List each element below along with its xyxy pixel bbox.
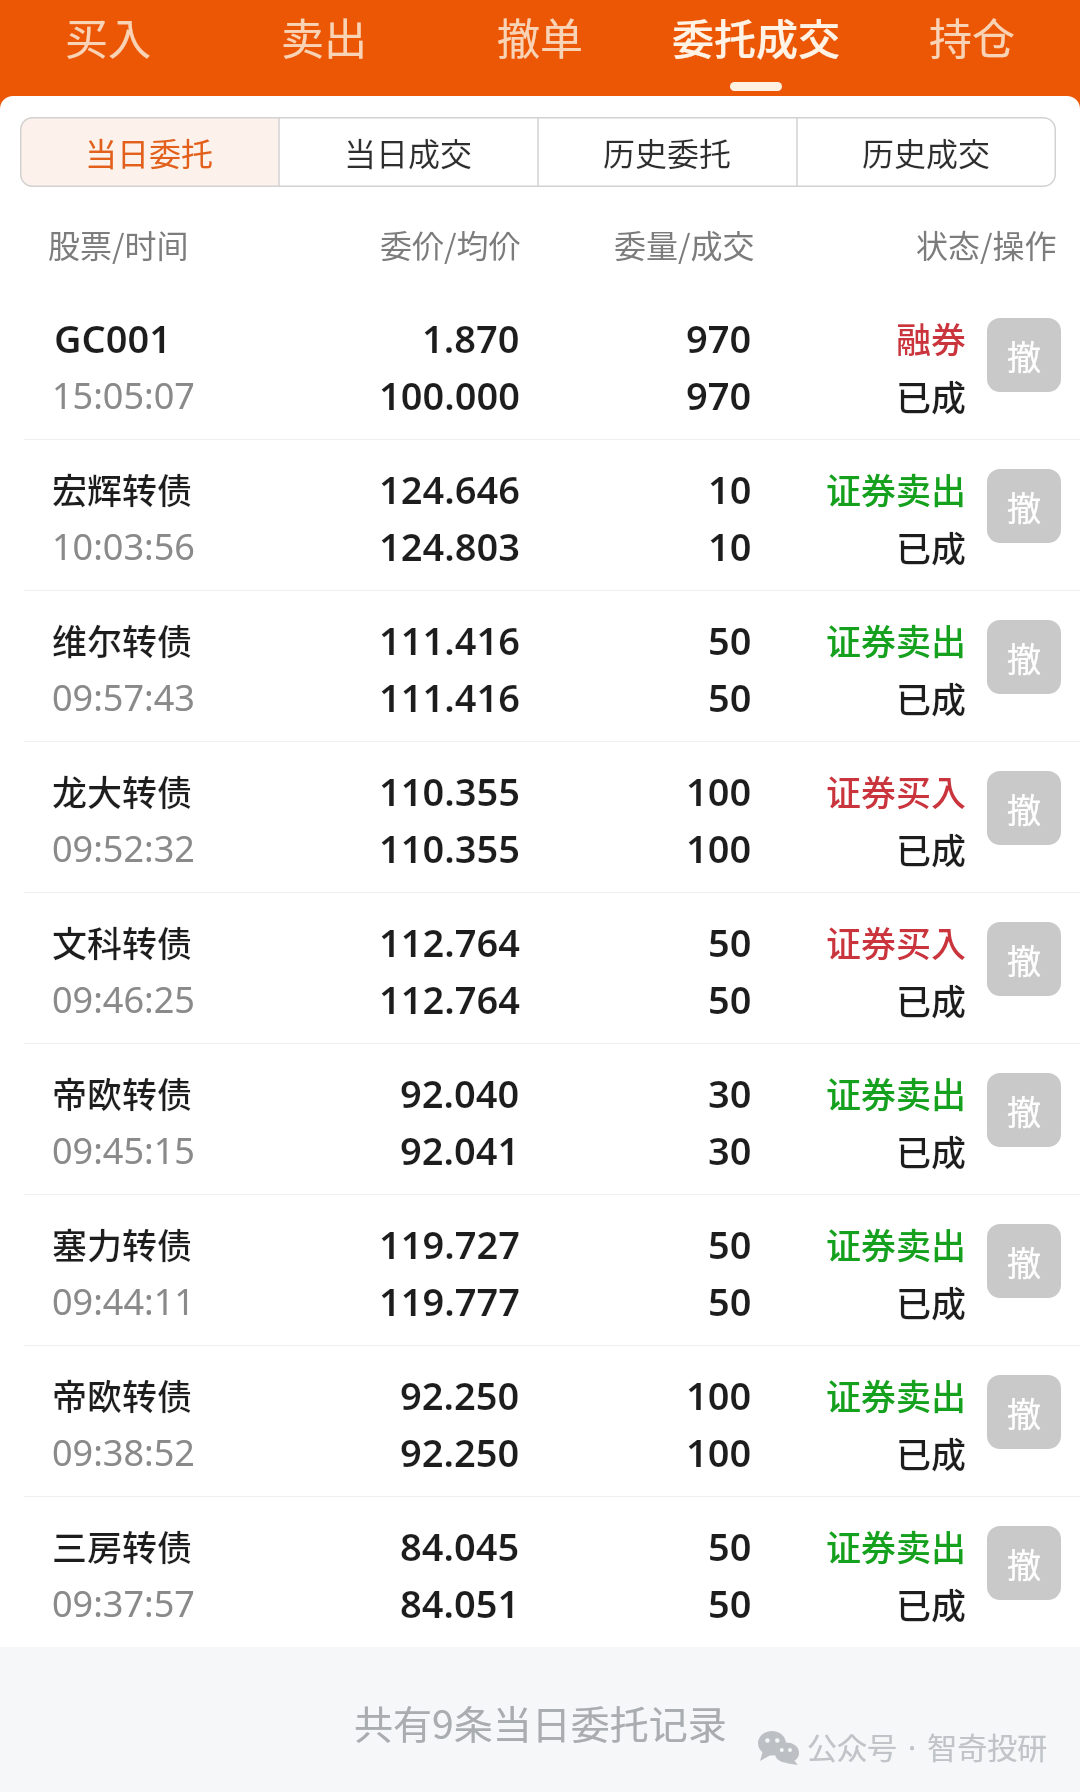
button[interactable]: 当日委托	[20, 117, 279, 187]
button[interactable]: 维尔转债	[0, 590, 1080, 741]
staticText: 撤	[1007, 784, 1041, 833]
staticText: 证券卖出	[826, 1218, 967, 1269]
staticText: 30	[708, 1124, 752, 1176]
staticText: 100.000	[379, 369, 520, 421]
button[interactable]: 卖出	[216, 0, 432, 100]
staticText: 124.646	[379, 463, 520, 515]
button[interactable]: 撤单	[987, 771, 1061, 845]
button[interactable]: 撤单	[987, 318, 1061, 392]
staticText: 证券卖出	[826, 1520, 967, 1571]
button[interactable]: GC001	[0, 288, 1080, 439]
staticText: 撤	[1007, 482, 1041, 531]
button[interactable]: 宏辉转债	[0, 439, 1080, 590]
staticText: 50	[708, 614, 752, 666]
button[interactable]: 文科转债	[0, 892, 1080, 1043]
staticText: 92.250	[400, 1426, 520, 1478]
staticText: 已成	[896, 672, 967, 723]
staticText: 92.040	[400, 1067, 520, 1119]
staticText: 撤	[1007, 1539, 1041, 1588]
staticText: 维尔转债	[52, 614, 193, 665]
staticText: 100	[686, 765, 752, 817]
button[interactable]: 塞力转债	[0, 1194, 1080, 1345]
staticText: 已成	[896, 521, 967, 572]
staticText: 状态/操作	[916, 221, 1057, 267]
staticText: 92.041	[400, 1124, 520, 1176]
staticText: 10:03:56	[52, 522, 195, 571]
staticText: 委价/均价	[380, 221, 521, 267]
staticText: 证券卖出	[826, 614, 967, 665]
staticText: 50	[708, 1577, 752, 1629]
staticText: 已成	[896, 1427, 967, 1478]
staticText: 09:45:15	[52, 1126, 195, 1175]
staticText: 50	[708, 671, 752, 723]
button[interactable]: 撤单	[987, 1224, 1061, 1298]
staticText: 112.764	[379, 973, 520, 1025]
staticText: 股票/时间	[48, 221, 189, 267]
staticText: 委托成交	[672, 6, 841, 67]
staticText: 92.250	[400, 1369, 520, 1421]
staticText: 持仓	[929, 5, 1015, 67]
staticText: 已成	[896, 1276, 967, 1327]
staticText: 证券卖出	[826, 1369, 967, 1420]
staticText: 10	[708, 463, 752, 515]
staticText: 09:52:32	[52, 824, 195, 873]
button[interactable]: 帝欧转债	[0, 1345, 1080, 1496]
staticText: 970	[686, 312, 752, 364]
button[interactable]: 撤单	[432, 0, 648, 100]
staticText: 证券卖出	[826, 1067, 967, 1118]
staticText: 龙大转债	[52, 765, 193, 816]
button[interactable]: 撤单	[987, 922, 1061, 996]
staticText: 111.416	[379, 614, 520, 666]
staticText: 撤	[1007, 633, 1041, 682]
staticText: 证券买入	[826, 916, 967, 967]
staticText: 委量/成交	[614, 221, 755, 267]
button[interactable]: 龙大转债	[0, 741, 1080, 892]
button[interactable]: 撤单	[987, 1526, 1061, 1600]
staticText: 帝欧转债	[52, 1067, 193, 1118]
staticText: 已成	[896, 1125, 967, 1176]
button[interactable]: 历史委托	[538, 117, 797, 187]
staticText: 已成	[896, 974, 967, 1025]
staticText: 09:57:43	[52, 673, 195, 722]
staticText: GC001	[54, 312, 172, 364]
staticText: 119.727	[379, 1218, 520, 1270]
staticText: 970	[686, 369, 752, 421]
staticText: 100	[686, 1426, 752, 1478]
staticText: 撤	[1007, 331, 1041, 380]
staticText: 110.355	[379, 765, 520, 817]
staticText: 50	[708, 1275, 752, 1327]
staticText: 50	[708, 973, 752, 1025]
staticText: 112.764	[379, 916, 520, 968]
staticText: 119.777	[379, 1275, 520, 1327]
staticText: 111.416	[379, 671, 520, 723]
staticText: 50	[708, 916, 752, 968]
staticText: 15:05:07	[52, 371, 195, 420]
staticText: 文科转债	[52, 916, 193, 967]
staticText: 历史委托	[603, 129, 732, 175]
staticText: 三房转债	[52, 1520, 193, 1571]
button[interactable]: 撤单	[987, 469, 1061, 543]
staticText: 历史成交	[862, 129, 991, 175]
button[interactable]: 委托成交	[648, 0, 864, 100]
staticText: 100	[686, 1369, 752, 1421]
staticText: 09:46:25	[52, 975, 195, 1024]
staticText: 30	[708, 1067, 752, 1119]
button[interactable]: 历史成交	[797, 117, 1056, 187]
button[interactable]: 帝欧转债	[0, 1043, 1080, 1194]
button[interactable]: 撤单	[987, 620, 1061, 694]
staticText: 塞力转债	[52, 1218, 193, 1269]
staticText: 84.051	[400, 1577, 520, 1629]
staticText: 100	[686, 822, 752, 874]
button[interactable]: 持仓	[864, 0, 1080, 100]
staticText: 已成	[896, 823, 967, 874]
button[interactable]: 撤单	[987, 1375, 1061, 1449]
staticText: 公众号 · 智奇投研	[807, 1724, 1048, 1767]
staticText: 证券买入	[826, 765, 967, 816]
button[interactable]: 三房转债	[0, 1496, 1080, 1647]
staticText: 50	[708, 1218, 752, 1270]
button[interactable]: 撤单	[987, 1073, 1061, 1147]
staticText: 已成	[896, 370, 967, 421]
staticText: 证券卖出	[826, 463, 967, 514]
button[interactable]: 买入	[0, 0, 216, 100]
button[interactable]: 当日成交	[279, 117, 538, 187]
